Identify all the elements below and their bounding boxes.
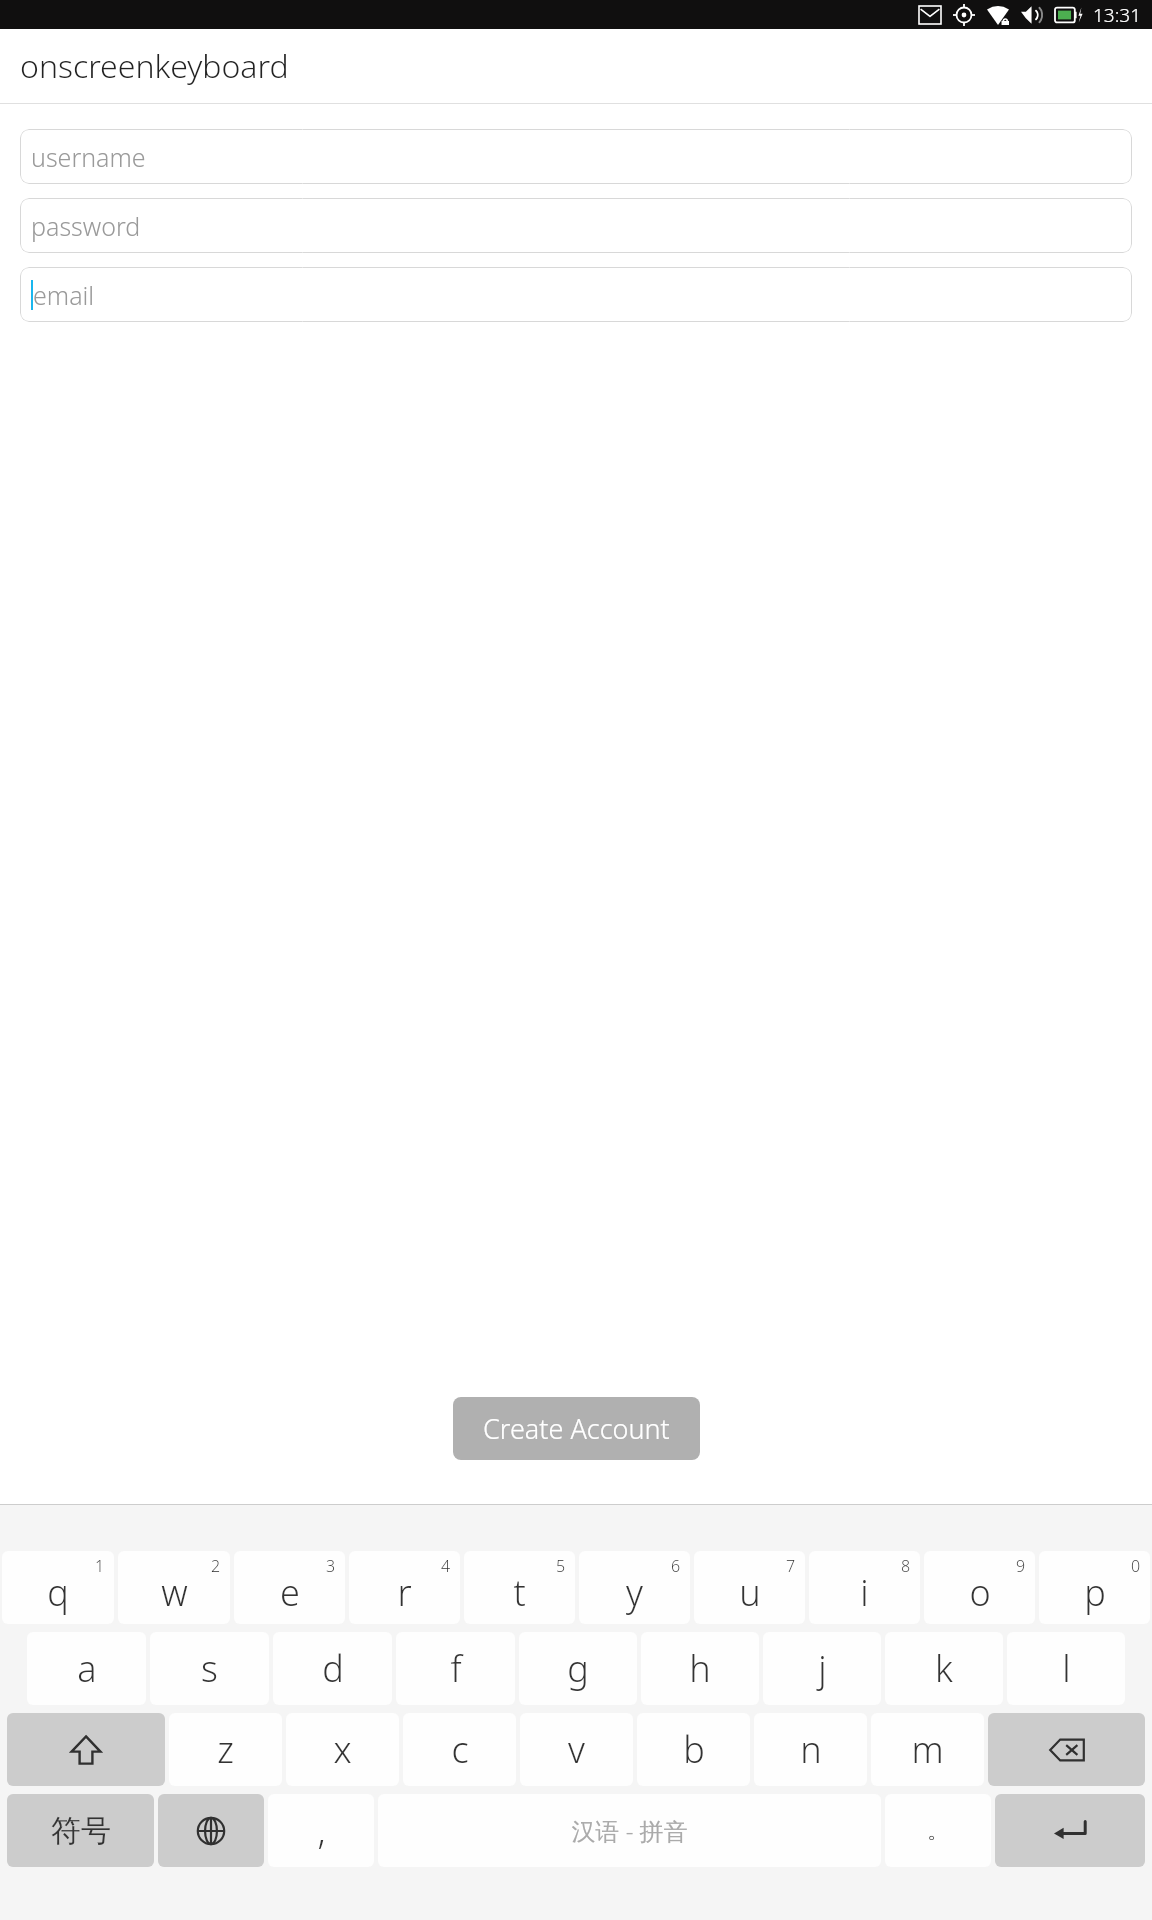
button[interactable]: 4 bbox=[349, 1551, 460, 1624]
button[interactable]: x bbox=[286, 1713, 399, 1786]
staticText: Create Account bbox=[483, 1410, 670, 1447]
button[interactable]: 7 bbox=[694, 1551, 805, 1624]
staticText: x bbox=[333, 1725, 352, 1774]
staticText: 6 bbox=[671, 1555, 681, 1577]
staticText: r bbox=[397, 1568, 412, 1617]
staticText: u bbox=[739, 1568, 761, 1617]
staticText: s bbox=[201, 1644, 218, 1693]
staticText: z bbox=[217, 1725, 234, 1774]
button[interactable]: d bbox=[273, 1632, 392, 1705]
button[interactable]: 汉语 - 拼音 bbox=[378, 1794, 881, 1867]
staticText: l bbox=[1062, 1644, 1071, 1693]
button[interactable]: v bbox=[520, 1713, 633, 1786]
staticText: 4 bbox=[441, 1555, 451, 1577]
staticText: b bbox=[683, 1725, 705, 1774]
button[interactable]: 0 bbox=[1039, 1551, 1150, 1624]
button[interactable]: 3 bbox=[234, 1551, 345, 1624]
button[interactable]: Shift bbox=[7, 1713, 165, 1786]
staticText: password bbox=[31, 209, 141, 243]
button[interactable]: c bbox=[403, 1713, 516, 1786]
staticText: w bbox=[161, 1568, 188, 1617]
staticText: email bbox=[33, 278, 95, 312]
staticText: 9 bbox=[1016, 1555, 1026, 1577]
button[interactable]: 符号 bbox=[7, 1794, 154, 1867]
staticText: onscreenkeyboard bbox=[20, 44, 289, 88]
button[interactable]: password bbox=[20, 198, 1132, 253]
staticText: p bbox=[1084, 1568, 1106, 1617]
button[interactable]: m bbox=[871, 1713, 984, 1786]
staticText: 8 bbox=[901, 1555, 911, 1577]
button[interactable]: Enter bbox=[995, 1794, 1145, 1867]
staticText: t bbox=[513, 1568, 526, 1617]
button[interactable]: 9 bbox=[924, 1551, 1035, 1624]
button[interactable]: f bbox=[396, 1632, 515, 1705]
staticText: f bbox=[450, 1644, 462, 1693]
staticText: k bbox=[935, 1644, 953, 1693]
staticText: e bbox=[280, 1568, 300, 1617]
staticText: n bbox=[800, 1725, 822, 1774]
button[interactable]: username bbox=[20, 129, 1132, 184]
staticText: h bbox=[689, 1644, 711, 1693]
button[interactable]: 2 bbox=[118, 1551, 230, 1624]
button[interactable]: l bbox=[1007, 1632, 1125, 1705]
staticText: v bbox=[568, 1725, 585, 1774]
staticText: 符号 bbox=[51, 1812, 111, 1850]
staticText: m bbox=[911, 1725, 944, 1774]
button[interactable]: Backspace bbox=[988, 1713, 1145, 1786]
staticText: , bbox=[317, 1806, 326, 1855]
staticText: username bbox=[31, 140, 146, 174]
staticText: 0 bbox=[1131, 1555, 1141, 1577]
button[interactable]: a bbox=[27, 1632, 146, 1705]
staticText: 。 bbox=[927, 1817, 949, 1845]
button[interactable]: 6 bbox=[579, 1551, 690, 1624]
staticText: d bbox=[322, 1644, 344, 1693]
staticText: 汉语 - 拼音 bbox=[571, 1814, 688, 1847]
button[interactable]: , bbox=[268, 1794, 374, 1867]
button[interactable]: b bbox=[637, 1713, 750, 1786]
staticText: 5 bbox=[556, 1555, 566, 1577]
staticText: q bbox=[47, 1568, 69, 1617]
button[interactable]: 8 bbox=[809, 1551, 920, 1624]
staticText: c bbox=[451, 1725, 469, 1774]
staticText: a bbox=[77, 1644, 97, 1693]
button[interactable]: email bbox=[20, 267, 1132, 322]
button[interactable]: s bbox=[150, 1632, 269, 1705]
button[interactable]: 1 bbox=[2, 1551, 114, 1624]
button[interactable]: k bbox=[885, 1632, 1003, 1705]
button[interactable]: Create Account bbox=[453, 1397, 700, 1460]
staticText: 3 bbox=[326, 1555, 336, 1577]
staticText: 13:31 bbox=[1093, 2, 1142, 28]
button[interactable]: z bbox=[169, 1713, 282, 1786]
button[interactable]: g bbox=[519, 1632, 637, 1705]
button[interactable]: 5 bbox=[464, 1551, 575, 1624]
staticText: 7 bbox=[786, 1555, 796, 1577]
staticText: 1 bbox=[95, 1555, 105, 1577]
button[interactable]: Change language bbox=[158, 1794, 264, 1867]
button[interactable]: n bbox=[754, 1713, 867, 1786]
staticText: o bbox=[969, 1568, 991, 1617]
staticText: 2 bbox=[211, 1555, 221, 1577]
staticText: i bbox=[860, 1568, 869, 1617]
button[interactable]: h bbox=[641, 1632, 759, 1705]
button[interactable]: 。 bbox=[885, 1794, 991, 1867]
staticText: y bbox=[626, 1568, 643, 1617]
staticText: g bbox=[567, 1644, 589, 1693]
staticText: j bbox=[818, 1644, 827, 1693]
button[interactable]: j bbox=[763, 1632, 881, 1705]
